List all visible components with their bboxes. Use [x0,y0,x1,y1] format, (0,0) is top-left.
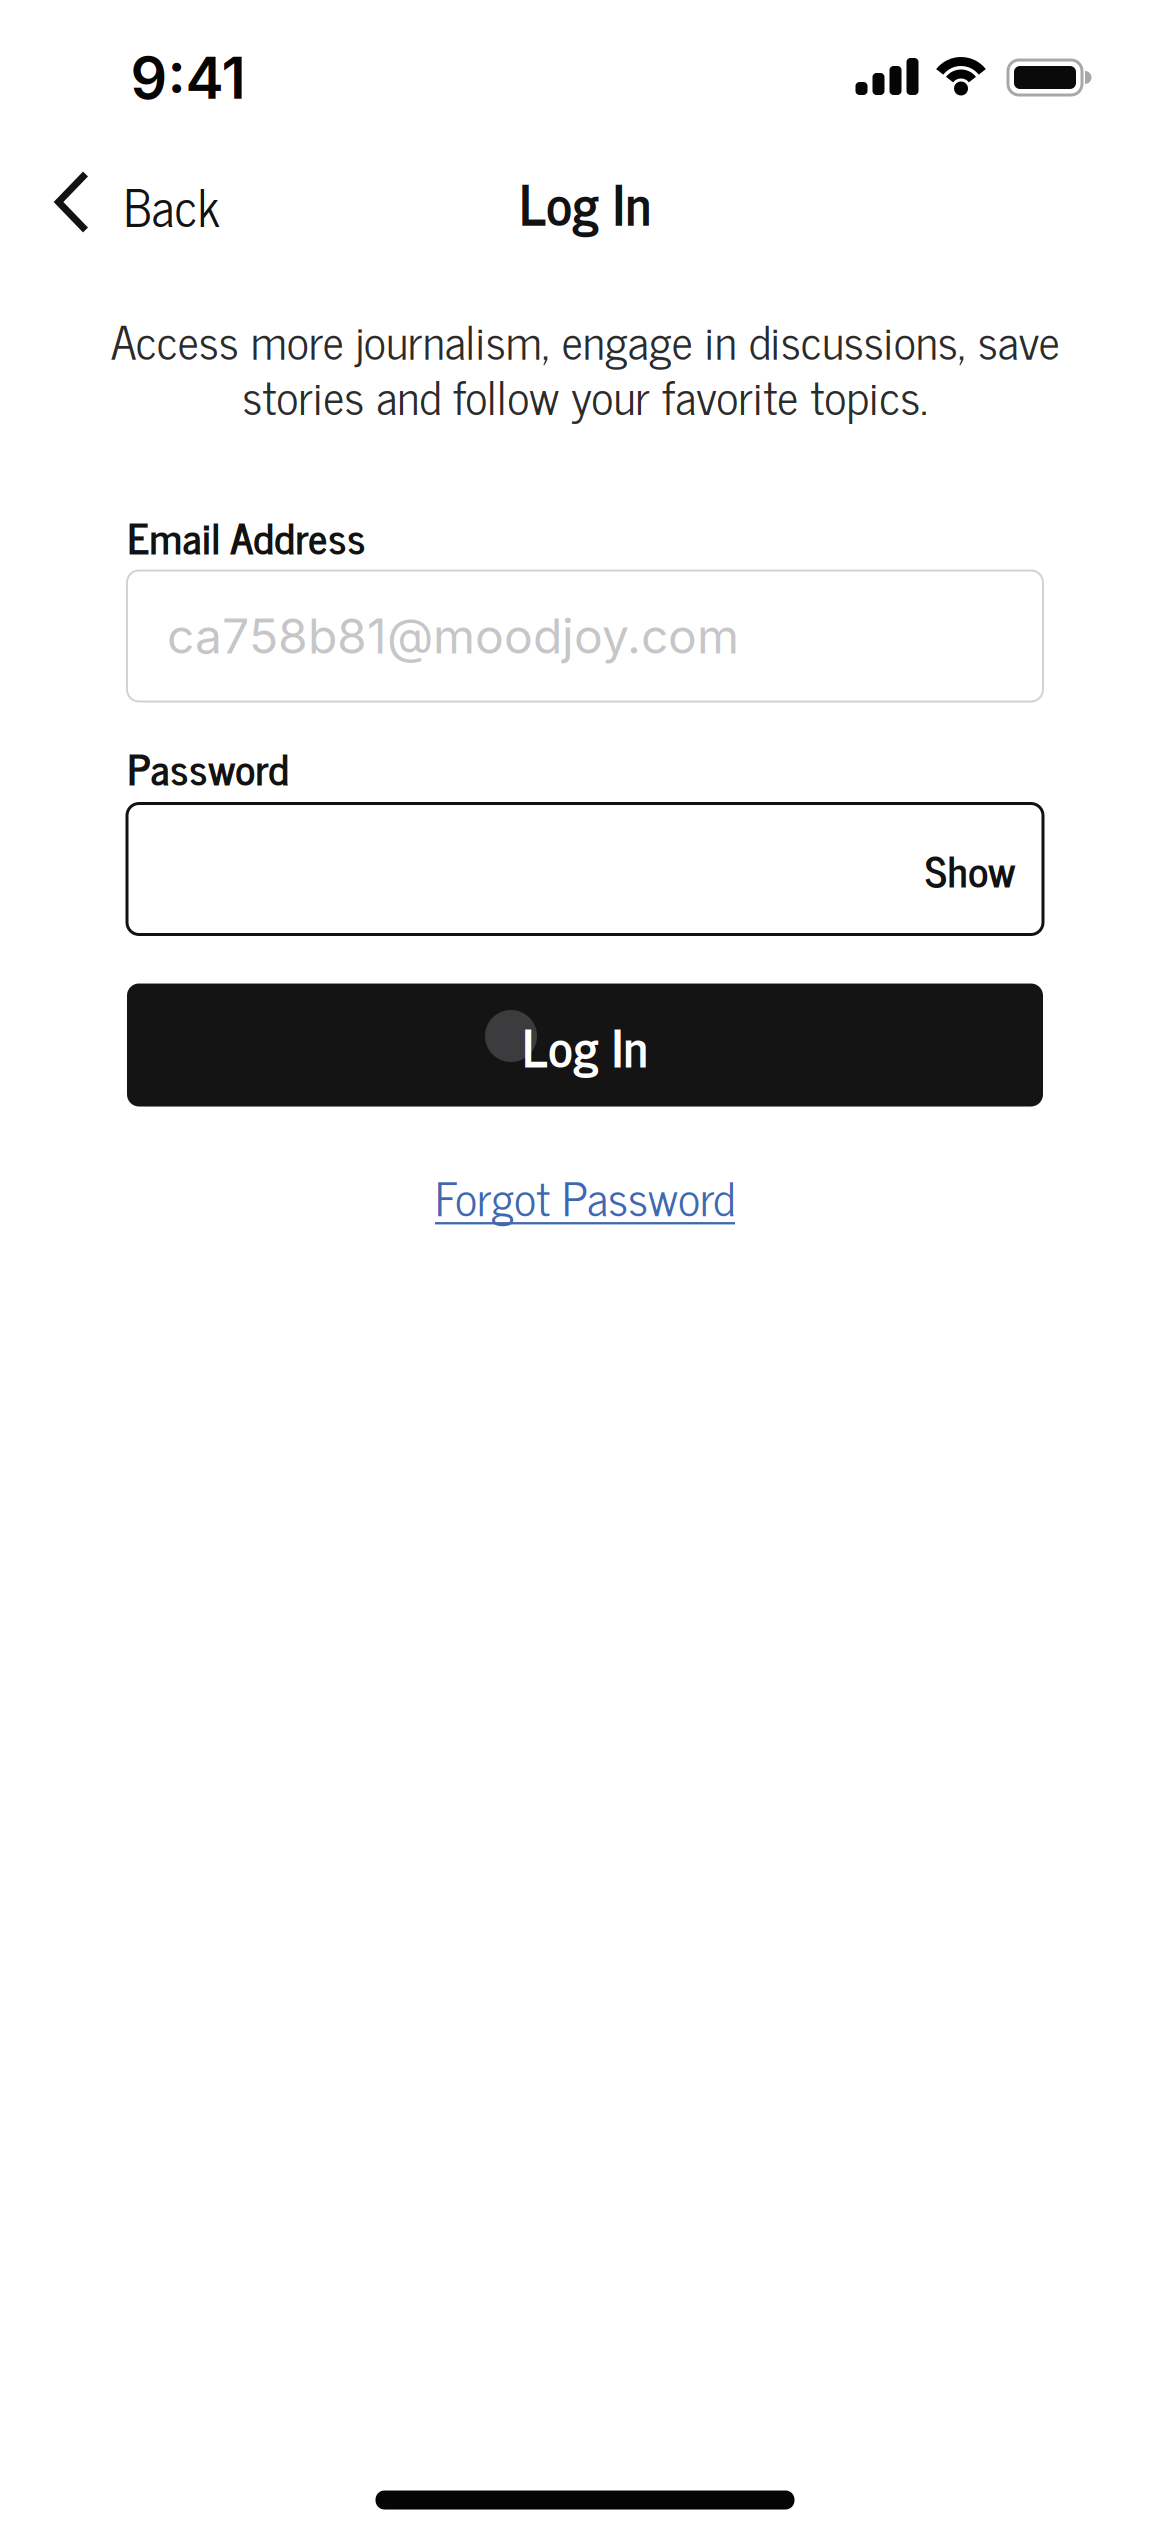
button[interactable]: Forgot Password [435,1168,735,1224]
button[interactable]: Show [925,844,1015,894]
staticText: Show [925,844,1015,894]
button[interactable]: Log In [127,983,1043,1106]
button[interactable]: Back [57,175,220,235]
staticText: 9:41 [130,43,245,113]
textField[interactable]: Email Address [127,570,1043,701]
staticText: Back [123,175,220,235]
staticText: Log In [522,1014,648,1076]
staticText: Log In [519,170,651,234]
secureTextField[interactable]: Password [127,803,1043,934]
staticText: Forgot Password [435,1168,735,1224]
staticText: Password [127,742,289,792]
staticText: Email Address [127,511,366,561]
staticText: ca758b81@moodjoy.com [167,607,739,665]
staticText: Access more journalism, engage in discus… [110,312,1059,422]
